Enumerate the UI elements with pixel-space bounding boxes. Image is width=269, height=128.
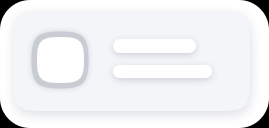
button[interactable] xyxy=(13,11,250,111)
